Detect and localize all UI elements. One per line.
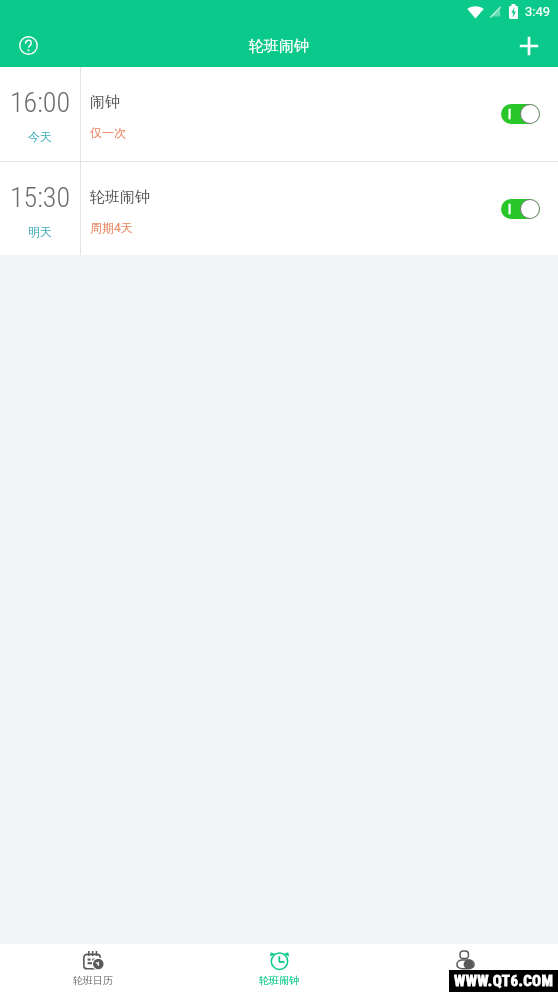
staticText: 仅一次 xyxy=(90,125,126,140)
button[interactable]: 轮班闹钟 xyxy=(186,944,372,992)
staticText: 我的 xyxy=(455,974,475,987)
staticText: 轮班闹钟 xyxy=(249,37,309,56)
button[interactable]: Add alarm xyxy=(510,27,548,65)
staticText: 轮班日历 xyxy=(73,974,113,987)
staticText: 15:30 xyxy=(10,181,71,214)
staticText: 轮班闹钟 xyxy=(90,188,150,207)
button[interactable]: 轮班日历 xyxy=(0,944,186,992)
button[interactable]: 15:30 xyxy=(0,162,558,255)
staticText: 明天 xyxy=(28,224,52,239)
button[interactable]: Help xyxy=(9,26,47,64)
button[interactable]: Toggle alarm xyxy=(501,104,540,124)
staticText: 16:00 xyxy=(10,86,71,119)
button[interactable]: Toggle alarm xyxy=(501,199,540,219)
staticText: 今天 xyxy=(28,129,52,144)
staticText: 3:49 xyxy=(525,4,551,19)
staticText: 周期4天 xyxy=(90,220,133,235)
staticText: 闹钟 xyxy=(90,93,120,112)
button[interactable]: 我的 xyxy=(372,944,558,992)
staticText: WWW.QT6.COM xyxy=(454,972,554,990)
button[interactable]: 16:00 xyxy=(0,67,558,161)
staticText: 轮班闹钟 xyxy=(259,974,299,987)
